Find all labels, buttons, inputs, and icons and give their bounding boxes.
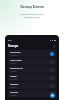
button[interactable]: Toggle xyxy=(50,60,54,64)
button[interactable]: Groceries xyxy=(8,50,56,57)
button[interactable]: Travel xyxy=(8,74,56,81)
staticText: Group Items xyxy=(0,4,64,9)
button[interactable]: Toggle xyxy=(50,52,54,56)
button[interactable]: Recipes xyxy=(8,82,56,89)
staticText: 21 items xyxy=(10,78,18,81)
staticText: 9 items xyxy=(10,86,17,89)
button[interactable]: Work tasks xyxy=(8,58,56,65)
button[interactable]: Toggle xyxy=(50,84,54,88)
button[interactable]: Add xyxy=(50,93,55,98)
staticText: 9:41 xyxy=(8,39,12,42)
button[interactable]: Toggle xyxy=(50,76,54,80)
button[interactable]: Reading list xyxy=(8,66,56,73)
button[interactable]: Archive xyxy=(8,90,56,97)
staticText: Groceries xyxy=(10,51,21,54)
staticText: Recipes xyxy=(10,83,19,86)
button[interactable]: Toggle xyxy=(50,68,54,72)
staticText: 8 items xyxy=(10,62,17,65)
button[interactable]: Toggle xyxy=(50,92,54,96)
button[interactable]: More options xyxy=(53,45,56,48)
staticText: 5 items xyxy=(10,70,17,73)
staticText: 3 items xyxy=(10,94,17,97)
staticText: Groups xyxy=(8,44,19,48)
staticText: Work tasks xyxy=(10,59,22,62)
staticText: 12 items xyxy=(10,54,18,57)
staticText: Travel xyxy=(10,75,17,78)
staticText: Reading list xyxy=(10,67,23,70)
staticText: Archive xyxy=(10,91,18,94)
staticText: Automatically sorting related entries xyxy=(0,12,64,19)
